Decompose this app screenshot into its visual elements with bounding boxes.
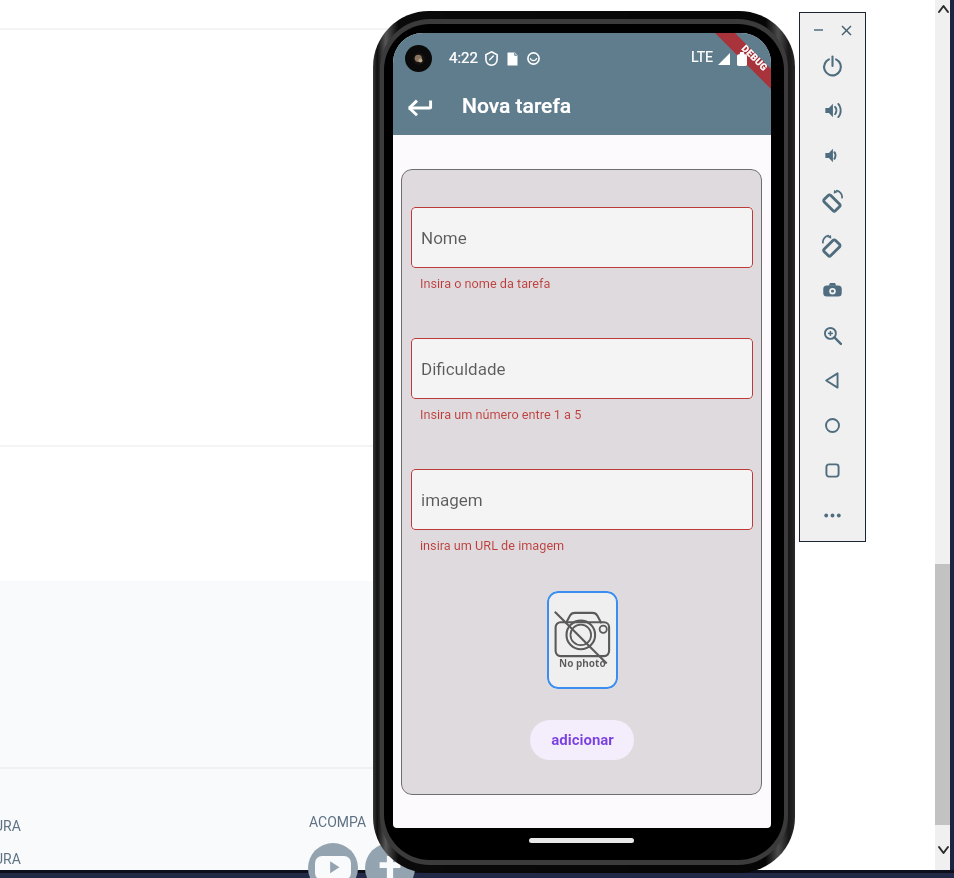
button[interactable]: Volume down (812, 135, 852, 175)
button[interactable]: Scroll down (936, 842, 950, 858)
staticText: Nova tarefa (462, 94, 572, 119)
staticText: Nome (421, 228, 467, 248)
staticText: imagem (421, 490, 483, 510)
button[interactable]: Rotate left (812, 180, 852, 220)
button[interactable]: Power (812, 45, 852, 85)
button[interactable]: Overview (812, 450, 852, 490)
button[interactable]: Back (812, 360, 852, 400)
button[interactable]: imagem (411, 469, 753, 530)
button[interactable]: Minimize (809, 21, 827, 39)
staticText: DEBUG (740, 43, 770, 73)
button[interactable]: More (812, 495, 852, 535)
staticText: LTE (691, 49, 713, 65)
button[interactable]: Back (395, 83, 443, 131)
staticText: ACOMPA (309, 814, 367, 830)
button[interactable]: Zoom in (812, 315, 852, 355)
button[interactable]: Volume up (812, 90, 852, 130)
staticText: URA (0, 851, 21, 867)
button[interactable]: Screenshot (812, 270, 852, 310)
staticText: No photo (559, 656, 606, 670)
button[interactable]: Rotate right (812, 225, 852, 265)
staticText: 4:22 (449, 49, 478, 67)
button[interactable]: Nome (411, 207, 753, 268)
staticText: URA (0, 818, 21, 834)
staticText: adicionar (551, 731, 614, 749)
staticText: Insira o nome da tarefa (420, 276, 551, 291)
button[interactable]: Close (837, 21, 855, 39)
button[interactable]: Dificuldade (411, 338, 753, 399)
button[interactable]: Home (812, 405, 852, 445)
staticText: Dificuldade (421, 359, 506, 379)
button[interactable]: No photo (547, 591, 618, 689)
staticText: Insira um número entre 1 a 5 (420, 407, 582, 422)
button[interactable]: Scroll up (936, 1, 950, 17)
button[interactable]: adicionar (530, 720, 634, 760)
staticText: insira um URL de imagem (420, 538, 565, 553)
